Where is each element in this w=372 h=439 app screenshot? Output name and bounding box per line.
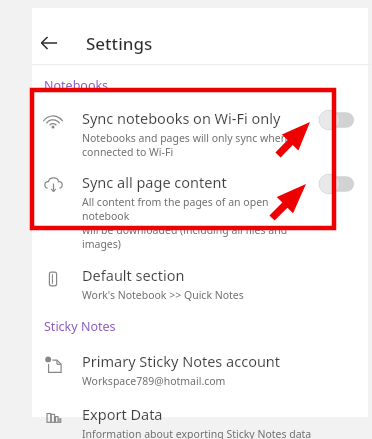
staticText: Sync all page content xyxy=(82,172,227,192)
staticText: Sticky Notes xyxy=(44,318,116,335)
staticText: Notebooks xyxy=(44,77,109,94)
button[interactable]: Default section xyxy=(0,265,372,302)
staticText: Workspace789@hotmail.com xyxy=(82,374,226,388)
button[interactable]: Export Data xyxy=(0,404,372,439)
button[interactable]: Sync notebooks on Wi-Fi only xyxy=(0,108,372,159)
button[interactable]: Toggle xyxy=(318,174,358,194)
staticText: Information about exporting Sticky Notes… xyxy=(82,427,312,439)
staticText: Sync notebooks on Wi-Fi only xyxy=(82,108,281,128)
staticText: All content from the pages of an open no… xyxy=(82,195,312,251)
button[interactable]: Toggle xyxy=(318,110,358,130)
staticText: Export Data xyxy=(82,404,163,424)
staticText: Work's Notebook >> Quick Notes xyxy=(82,288,244,302)
button[interactable]: Primary Sticky Notes account xyxy=(0,351,372,388)
staticText: Notebooks and pages will only sync when … xyxy=(82,131,288,159)
staticText: Default section xyxy=(82,265,185,285)
button[interactable]: Back xyxy=(34,28,64,58)
staticText: Primary Sticky Notes account xyxy=(82,351,281,371)
staticText: Settings xyxy=(86,32,153,55)
button[interactable]: Sync all page content xyxy=(0,172,372,251)
